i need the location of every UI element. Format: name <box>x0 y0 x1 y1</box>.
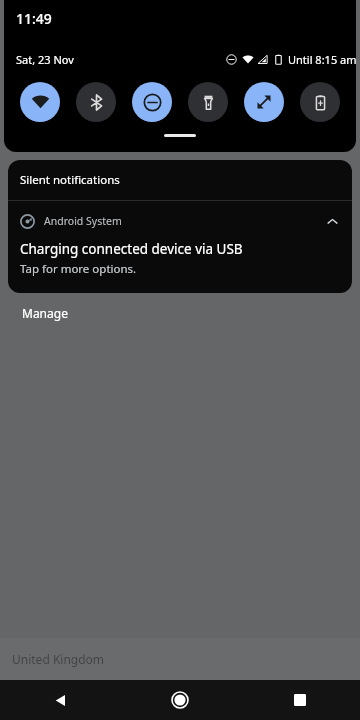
staticText: Silent notifications <box>20 172 120 188</box>
button[interactable]: Battery Saver <box>300 82 340 122</box>
staticText: Sat, 23 Nov <box>16 52 74 67</box>
button[interactable]: Silent notifications <box>8 160 352 200</box>
button[interactable]: Recents <box>240 680 360 720</box>
staticText: Android System <box>44 214 122 228</box>
staticText: Manage <box>22 305 68 321</box>
button[interactable]: Wi-Fi <box>20 82 60 122</box>
staticText: 11:49 <box>16 9 52 28</box>
button[interactable]: Home <box>120 680 240 720</box>
button[interactable]: Auto-rotate <box>244 82 284 122</box>
button[interactable]: Back <box>0 680 120 720</box>
button[interactable]: Android System <box>8 201 352 293</box>
button[interactable]: Bluetooth <box>76 82 116 122</box>
staticText: Until 8:15 am <box>288 52 356 67</box>
staticText: Charging connected device via USB <box>20 240 243 258</box>
button[interactable]: Do Not Disturb <box>132 82 172 122</box>
button[interactable]: Collapse <box>322 211 342 231</box>
staticText: Tap for more options. <box>20 261 137 277</box>
button[interactable]: Flashlight <box>188 82 228 122</box>
staticText: United Kingdom <box>12 651 105 667</box>
button[interactable]: Manage <box>14 300 76 326</box>
